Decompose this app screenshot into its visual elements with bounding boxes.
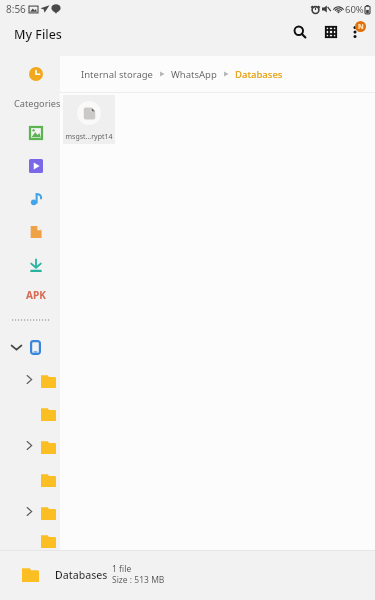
button[interactable]: Search	[286, 18, 314, 46]
button[interactable]: Internal storage	[0, 331, 60, 363]
button[interactable]: Folder	[0, 495, 60, 528]
button[interactable]: Folder	[0, 462, 60, 495]
button[interactable]: Folder	[0, 528, 60, 550]
staticText: N	[358, 22, 364, 32]
staticText: APK	[26, 288, 46, 302]
staticText: 8:56	[6, 2, 26, 16]
staticText: Databases	[55, 568, 108, 582]
button[interactable]: msgstore.db.crypt14	[63, 95, 115, 144]
button[interactable]: More options	[341, 18, 369, 46]
button[interactable]: Recent	[23, 61, 49, 87]
button[interactable]: Grid view	[317, 18, 345, 46]
button[interactable]: Folder	[0, 396, 60, 429]
button[interactable]: Images	[23, 120, 49, 146]
button[interactable]: Databases	[0, 551, 375, 600]
button[interactable]: WhatsApp	[169, 64, 219, 85]
button[interactable]: Folder	[0, 429, 60, 462]
staticText: msgst...rypt14	[65, 132, 113, 142]
button[interactable]: Downloads	[23, 252, 49, 278]
staticText: Size : 513 MB	[112, 574, 165, 586]
staticText: Categories	[14, 97, 61, 110]
staticText: 1 file	[112, 563, 132, 575]
button[interactable]: Videos	[23, 153, 49, 179]
button[interactable]: Folder	[0, 363, 60, 396]
staticText: My Files	[14, 26, 62, 43]
staticText: 60%	[345, 3, 364, 16]
button[interactable]: Documents	[23, 219, 49, 245]
button[interactable]: Databases	[233, 64, 285, 85]
button[interactable]: Internal storage	[79, 64, 155, 85]
button[interactable]: APK files	[21, 283, 51, 307]
button[interactable]: Audio	[23, 186, 49, 212]
